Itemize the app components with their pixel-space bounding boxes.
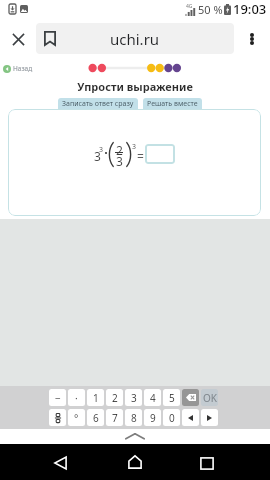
staticText: 8 [131, 411, 137, 425]
button[interactable]: Back [46, 449, 74, 477]
button[interactable]: OK [201, 389, 218, 406]
button[interactable] [145, 144, 175, 164]
staticText: 6 [93, 411, 99, 425]
button[interactable]: − [49, 389, 66, 406]
staticText: 3 [94, 148, 101, 164]
staticText: 5 [169, 391, 175, 405]
staticText: = [137, 148, 144, 164]
staticText: OK [203, 391, 217, 405]
staticText: − [55, 391, 61, 405]
button[interactable]: More options [239, 26, 265, 52]
staticText: 3 [132, 142, 137, 152]
staticText: 4 [150, 391, 156, 405]
staticText: 3 [116, 153, 123, 169]
button[interactable] [201, 409, 218, 426]
staticText: 9 [150, 411, 156, 425]
button[interactable]: Записать ответ сразу [62, 98, 134, 110]
button[interactable]: 6 [87, 409, 104, 426]
button[interactable]: 1 [87, 389, 104, 406]
button[interactable]: 9 [144, 409, 161, 426]
button[interactable] [182, 389, 199, 406]
staticText: · [75, 391, 78, 405]
button[interactable]: 7 [106, 409, 123, 426]
button[interactable]: uchi.ru [36, 23, 234, 54]
staticText: Упрости выражение [77, 79, 193, 93]
button[interactable]: 3 [125, 389, 142, 406]
button[interactable]: 8 [125, 409, 142, 426]
button[interactable]: ° [68, 409, 85, 426]
button[interactable]: Home [121, 448, 149, 476]
button[interactable]: · [68, 389, 85, 406]
button[interactable]: Close [5, 26, 31, 52]
staticText: 19:03 [233, 0, 267, 18]
button[interactable]: Назад [3, 64, 33, 73]
button[interactable]: Hide keyboard [120, 429, 150, 443]
button[interactable]: 0 [163, 409, 180, 426]
staticText: uchi.ru [110, 29, 160, 49]
staticText: 7 [112, 411, 118, 425]
staticText: Решать вместе [147, 99, 198, 109]
staticText: 1 [93, 391, 99, 405]
staticText: 3 [99, 145, 104, 155]
staticText: ° [74, 411, 79, 425]
button[interactable]: Recent apps [193, 449, 221, 477]
staticText: 50 % [198, 2, 223, 17]
button[interactable]: 4 [144, 389, 161, 406]
staticText: 0 [169, 411, 175, 425]
button[interactable]: 5 [163, 389, 180, 406]
staticText: Записать ответ сразу [62, 99, 134, 109]
staticText: 2 [116, 142, 123, 158]
staticText: 3 [131, 391, 137, 405]
staticText: 2 [112, 391, 118, 405]
button[interactable]: Решать вместе [147, 98, 198, 110]
staticText: 4G [186, 3, 193, 10]
button[interactable]: 2 [106, 389, 123, 406]
staticText: Назад [13, 64, 33, 73]
button[interactable] [182, 409, 199, 426]
button[interactable] [49, 409, 66, 426]
